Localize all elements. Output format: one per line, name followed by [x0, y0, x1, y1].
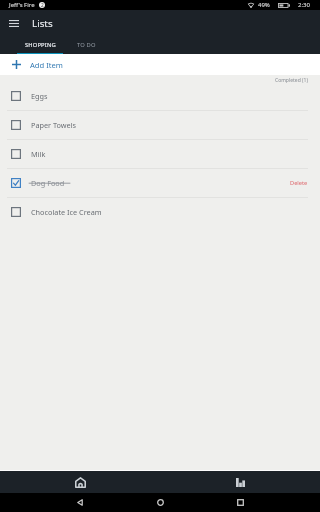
button[interactable]: Home	[0, 471, 160, 493]
button[interactable]: Paper Towels	[0, 111, 320, 139]
staticText: Eggs	[31, 91, 48, 101]
staticText: Completed (1)	[275, 77, 308, 84]
button[interactable]: TO DO	[63, 36, 109, 54]
button[interactable]: Dog Food	[0, 169, 320, 197]
button[interactable]: Statistics	[160, 471, 320, 493]
button[interactable]: SHOPPING	[17, 36, 63, 54]
button[interactable]: Add Item	[0, 54, 320, 75]
staticText: SHOPPING	[25, 41, 56, 49]
button[interactable]: Home	[140, 493, 180, 512]
button[interactable]: Chocolate Ice Cream	[0, 198, 320, 226]
button[interactable]: Back	[60, 493, 100, 512]
staticText: 2:30	[298, 1, 310, 9]
staticText: Chocolate Ice Cream	[31, 207, 102, 217]
button[interactable]: Eggs	[0, 82, 320, 110]
staticText: Paper Towels	[31, 120, 77, 130]
staticText: Dog Food	[31, 178, 65, 188]
staticText: 49%	[258, 1, 270, 9]
staticText: TO DO	[77, 41, 96, 49]
staticText: Add Item	[30, 60, 63, 70]
staticText: Jeff's Fire	[9, 1, 35, 9]
button[interactable]: Navigation menu	[0, 10, 28, 36]
button[interactable]: Milk	[0, 140, 320, 168]
staticText: 2	[41, 2, 44, 8]
staticText: Lists	[32, 17, 53, 30]
staticText: Milk	[31, 149, 46, 159]
button[interactable]: Recent apps	[220, 493, 260, 512]
staticText: Delete	[290, 179, 308, 187]
